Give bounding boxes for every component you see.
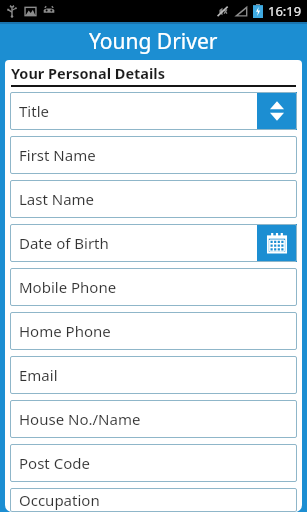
- staticText: Mobile Phone: [19, 277, 117, 297]
- button[interactable]: Date of Birth: [10, 224, 297, 262]
- staticText: First Name: [19, 145, 96, 165]
- staticText: Title: [19, 101, 49, 121]
- staticText: Young Driver: [89, 27, 218, 56]
- staticText: Email: [19, 365, 58, 385]
- button[interactable]: Occupation: [10, 488, 297, 512]
- staticText: Home Phone: [19, 321, 111, 341]
- staticText: Your Personal Details: [11, 63, 165, 83]
- button[interactable]: Pick date of birth: [257, 224, 297, 262]
- staticText: Last Name: [19, 189, 95, 209]
- button[interactable]: Last Name: [10, 180, 297, 218]
- button[interactable]: Mobile Phone: [10, 268, 297, 306]
- button[interactable]: Title: [10, 92, 297, 130]
- button[interactable]: House No./Name: [10, 400, 297, 438]
- button[interactable]: Home Phone: [10, 312, 297, 350]
- staticText: House No./Name: [19, 409, 141, 429]
- button[interactable]: First Name: [10, 136, 297, 174]
- staticText: Occupation: [19, 490, 100, 510]
- staticText: Post Code: [19, 453, 90, 473]
- staticText: Date of Birth: [19, 233, 109, 253]
- button[interactable]: Email: [10, 356, 297, 394]
- button[interactable]: Post Code: [10, 444, 297, 482]
- staticText: 16:19: [268, 2, 302, 20]
- button[interactable]: Select title: [257, 92, 297, 130]
